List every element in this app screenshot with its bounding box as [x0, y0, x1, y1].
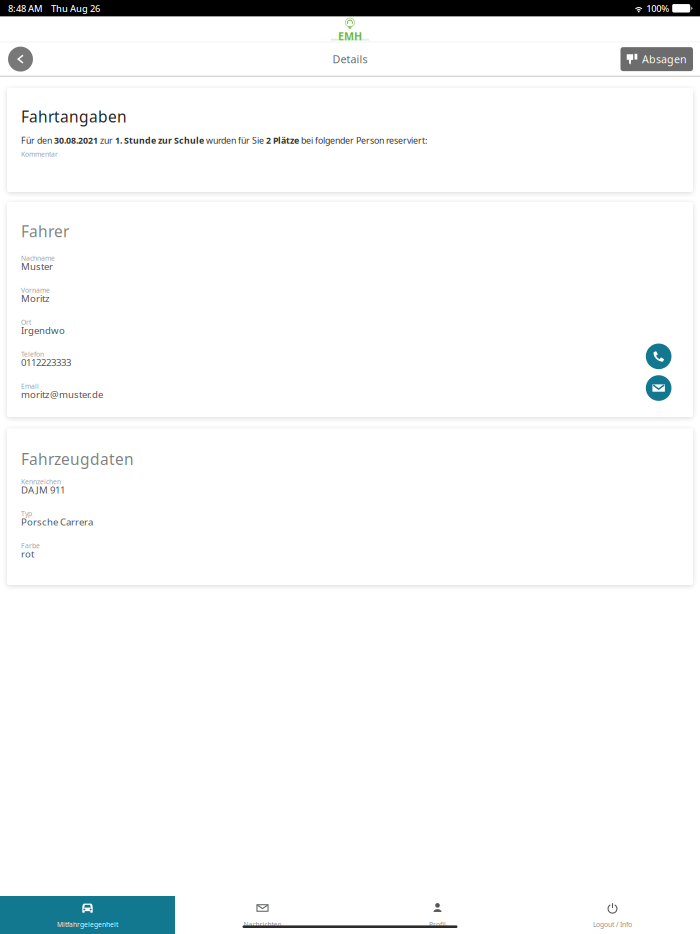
staticText: Typ: [21, 509, 32, 518]
staticText: Moritz: [21, 292, 50, 305]
button[interactable]: E-Mail senden: [646, 375, 671, 401]
staticText: EMH: [338, 29, 362, 43]
staticText: 0112223333: [21, 356, 71, 369]
staticText: Nachrichten: [243, 920, 281, 929]
button[interactable]: Absagen: [620, 47, 693, 71]
button[interactable]: Anrufen: [646, 343, 671, 369]
staticText: Thu Aug 26: [51, 2, 100, 14]
staticText: 100%: [646, 2, 669, 14]
staticText: Absagen: [642, 52, 687, 66]
button[interactable]: Nachrichten: [175, 896, 350, 934]
staticText: Details: [332, 52, 367, 66]
staticText: Fahrtangaben: [21, 106, 127, 127]
button[interactable]: Mitfahrgelegenheit: [0, 896, 175, 934]
staticText: Fahrer: [21, 221, 69, 242]
staticText: Logout / Info: [593, 920, 632, 929]
button[interactable]: Profil: [350, 896, 525, 934]
staticText: Telefon: [21, 350, 44, 359]
staticText: Vorname: [21, 286, 50, 295]
button[interactable]: Zurück: [8, 47, 33, 72]
staticText: Kennzeichen: [21, 477, 61, 486]
staticText: Profil: [429, 920, 446, 929]
staticText: Muster: [21, 260, 53, 273]
staticText: Irgendwo: [21, 324, 65, 337]
staticText: Fahrzeugdaten: [21, 448, 134, 469]
staticText: moritz@muster.de: [21, 388, 103, 401]
staticText: rot: [21, 547, 34, 560]
staticText: Ort: [21, 318, 31, 327]
staticText: DA JM 911: [21, 483, 65, 496]
staticText: nnnn nnnnnn nnnnnnnn: [331, 38, 369, 41]
staticText: Farbe: [21, 541, 40, 550]
staticText: Kommentar: [21, 149, 58, 159]
staticText: Porsche Carrera: [21, 515, 93, 528]
staticText: Für den 30.08.2021 zur 1. Stunde zur Sch…: [21, 134, 427, 146]
staticText: 8:48 AM: [8, 2, 43, 14]
staticText: Mitfahrgelegenheit: [57, 920, 118, 929]
button[interactable]: Logout / Info: [525, 896, 700, 934]
staticText: Email: [21, 382, 39, 391]
staticText: Nachname: [21, 254, 55, 263]
